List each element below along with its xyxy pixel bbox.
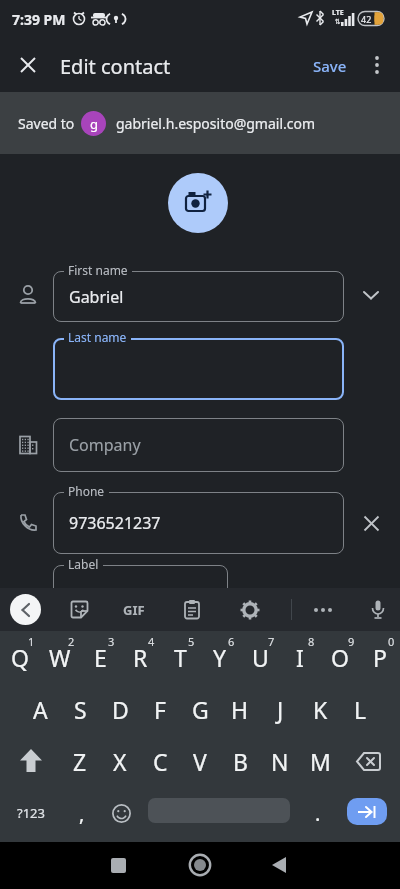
button[interactable]: E xyxy=(80,631,120,683)
button[interactable]: GIF xyxy=(117,594,151,625)
staticText: 1 xyxy=(28,634,35,648)
button[interactable]: P xyxy=(360,631,400,683)
button[interactable]: B xyxy=(220,735,260,787)
staticText: First name xyxy=(68,262,128,278)
staticText: 6 xyxy=(228,634,235,648)
staticText: ?123 xyxy=(17,804,45,822)
staticText: L xyxy=(354,694,367,725)
staticText: 9736521237 xyxy=(69,512,161,534)
button[interactable]: C xyxy=(140,735,180,787)
staticText: Save xyxy=(313,56,347,76)
button[interactable]: K xyxy=(300,683,340,735)
staticText: T xyxy=(174,642,187,673)
button[interactable] xyxy=(176,594,207,625)
button[interactable] xyxy=(10,594,41,625)
staticText: , xyxy=(79,800,85,827)
button[interactable] xyxy=(100,846,136,884)
button[interactable]: ?123 xyxy=(8,787,54,839)
button[interactable]: D xyxy=(100,683,140,735)
button[interactable]: F xyxy=(140,683,180,735)
button[interactable] xyxy=(362,594,393,625)
button[interactable]: S xyxy=(60,683,100,735)
button[interactable]: J xyxy=(260,683,300,735)
button[interactable] xyxy=(234,594,265,625)
button[interactable] xyxy=(347,798,387,825)
staticText: P xyxy=(373,642,387,673)
button[interactable]: A xyxy=(20,683,60,735)
staticText: 2 xyxy=(68,634,75,648)
staticText: . xyxy=(315,800,321,827)
button[interactable] xyxy=(182,846,218,884)
button[interactable]: N xyxy=(260,735,300,787)
button[interactable]: O xyxy=(320,631,360,683)
button[interactable] xyxy=(64,594,95,625)
staticText: Gabriel xyxy=(69,286,124,308)
button[interactable]: M xyxy=(300,735,340,787)
button[interactable]: G xyxy=(180,683,220,735)
button[interactable]: Y xyxy=(200,631,240,683)
staticText: K xyxy=(313,694,328,725)
staticText: A xyxy=(33,694,48,725)
staticText: 7:39 PM xyxy=(12,10,66,29)
staticText: M xyxy=(310,746,331,777)
staticText: Z xyxy=(73,746,87,777)
button[interactable] xyxy=(362,49,392,81)
staticText: E xyxy=(94,642,107,673)
button[interactable]: , xyxy=(62,787,102,839)
staticText: 8 xyxy=(308,634,315,648)
button[interactable]: . xyxy=(300,787,336,839)
button[interactable]: Company xyxy=(53,418,344,472)
button[interactable] xyxy=(307,594,338,625)
staticText: Q xyxy=(11,642,29,673)
staticText: 7 xyxy=(268,634,275,648)
staticText: 5 xyxy=(188,634,195,648)
button[interactable] xyxy=(53,338,344,400)
staticText: S xyxy=(74,694,87,725)
staticText: 42 xyxy=(361,13,372,25)
button[interactable]: Q xyxy=(0,631,40,683)
staticText: LTE xyxy=(332,8,344,17)
button[interactable]: Saved to xyxy=(0,92,400,154)
staticText: O xyxy=(331,642,349,673)
button[interactable]: W xyxy=(40,631,80,683)
button[interactable]: T xyxy=(160,631,200,683)
button[interactable] xyxy=(102,787,140,839)
button[interactable]: X xyxy=(100,735,140,787)
staticText: N xyxy=(271,746,289,777)
staticText: F xyxy=(154,694,166,725)
button[interactable]: L xyxy=(340,683,380,735)
button[interactable] xyxy=(8,735,54,787)
button[interactable] xyxy=(168,173,228,233)
button[interactable]: R xyxy=(120,631,160,683)
button[interactable] xyxy=(261,846,297,884)
staticText: W xyxy=(49,642,71,673)
staticText: V xyxy=(193,746,207,777)
staticText: G xyxy=(192,694,209,725)
button[interactable]: I xyxy=(280,631,320,683)
button[interactable]: 9736521237 xyxy=(53,492,344,554)
button[interactable] xyxy=(344,735,392,787)
staticText: H xyxy=(231,694,249,725)
staticText: R xyxy=(133,642,148,673)
staticText: Label xyxy=(68,556,99,572)
button[interactable]: U xyxy=(240,631,280,683)
staticText: Edit contact xyxy=(60,53,171,80)
staticText: 0 xyxy=(388,634,395,648)
staticText: X xyxy=(113,746,127,777)
button[interactable] xyxy=(356,280,386,310)
staticText: D xyxy=(112,694,129,725)
button[interactable] xyxy=(356,508,386,538)
button[interactable]: Z xyxy=(60,735,100,787)
staticText: ⇅ xyxy=(335,18,341,26)
button[interactable]: V xyxy=(180,735,220,787)
button[interactable] xyxy=(53,565,228,605)
button[interactable] xyxy=(12,49,44,81)
button[interactable]: Save xyxy=(308,52,352,80)
button[interactable]: H xyxy=(220,683,260,735)
staticText: U xyxy=(252,642,269,673)
staticText: Y xyxy=(213,642,227,673)
staticText: gabriel.h.esposito@gmail.com xyxy=(116,114,316,133)
staticText: C xyxy=(153,746,168,777)
button[interactable]: Gabriel xyxy=(53,271,344,322)
